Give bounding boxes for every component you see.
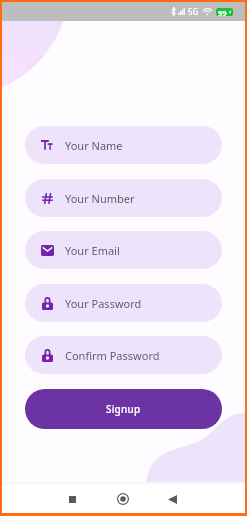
button[interactable]: Your Password bbox=[25, 284, 222, 322]
button[interactable]: Confirm Password bbox=[25, 336, 222, 374]
staticText: Signup bbox=[106, 402, 141, 416]
button[interactable]: Back bbox=[158, 485, 186, 513]
staticText: Your Number bbox=[65, 191, 135, 206]
staticText: Your Name bbox=[65, 138, 123, 153]
button[interactable]: Your Number bbox=[25, 179, 222, 217]
button[interactable]: Your Name bbox=[25, 126, 222, 164]
staticText: 99 bbox=[218, 8, 227, 16]
button[interactable]: Signup bbox=[25, 389, 222, 429]
staticText: Confirm Password bbox=[65, 348, 160, 363]
button[interactable]: Home bbox=[109, 485, 137, 513]
staticText: 5G bbox=[188, 6, 199, 17]
staticText: Your Email bbox=[65, 243, 120, 258]
button[interactable]: Recent apps bbox=[58, 485, 86, 513]
button[interactable]: Your Email bbox=[25, 231, 222, 269]
staticText: Your Password bbox=[65, 296, 142, 311]
